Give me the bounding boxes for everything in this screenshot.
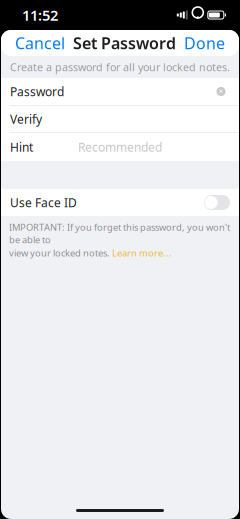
staticText: Done bbox=[184, 32, 225, 54]
button[interactable]: Done bbox=[184, 26, 239, 60]
staticText: ✕ bbox=[218, 88, 224, 95]
staticText: IMPORTANT: If you forget this password, … bbox=[9, 221, 230, 246]
staticText: Password bbox=[10, 83, 64, 99]
staticText: Create a password for all your locked no… bbox=[10, 60, 230, 74]
staticText: Use Face ID bbox=[10, 194, 77, 210]
button[interactable]: Cancel bbox=[1, 26, 65, 60]
staticText: Verify bbox=[10, 111, 42, 127]
staticText: view your locked notes. bbox=[9, 247, 112, 259]
staticText: Set Password bbox=[73, 32, 176, 54]
staticText: 11:52 bbox=[22, 5, 58, 25]
button[interactable]: Clear password bbox=[212, 82, 230, 100]
button[interactable]: Learn more... bbox=[112, 247, 172, 259]
staticText: Learn more... bbox=[112, 247, 172, 259]
staticText: Hint bbox=[10, 139, 33, 155]
staticText: Recommended bbox=[78, 139, 162, 155]
button[interactable]: Use Face ID bbox=[1, 189, 239, 216]
staticText: Cancel bbox=[15, 32, 65, 54]
